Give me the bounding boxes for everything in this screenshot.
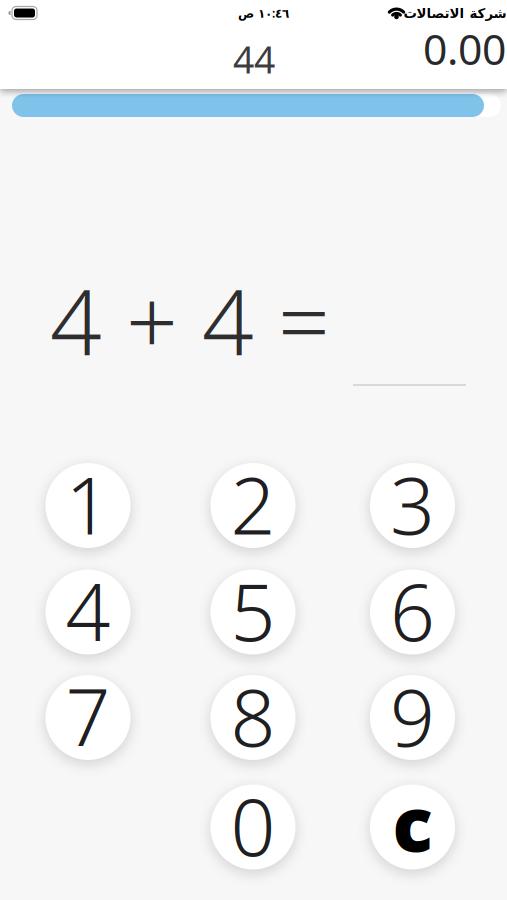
staticText: 9 <box>390 664 435 768</box>
staticText: 0.00 <box>423 20 506 77</box>
staticText: 8 <box>230 664 275 768</box>
button[interactable]: 8 <box>210 675 295 760</box>
button[interactable]: 7 <box>45 675 130 760</box>
button[interactable]: 4 <box>45 569 130 654</box>
staticText: شركة الاتصالات <box>403 6 506 21</box>
button[interactable]: 2 <box>210 463 295 548</box>
staticText: 6 <box>390 558 435 663</box>
staticText: ١٠:٤٦ ص <box>237 5 288 21</box>
staticText: 4 + 4 = <box>50 260 330 380</box>
button[interactable]: 3 <box>370 463 455 548</box>
staticText: 5 <box>230 558 275 663</box>
button[interactable]: 5 <box>210 569 295 654</box>
staticText: 1 <box>65 452 110 556</box>
staticText: 44 <box>233 34 275 84</box>
button[interactable]: 1 <box>45 463 130 548</box>
staticText: 0 <box>230 773 275 878</box>
button[interactable]: Clear <box>370 784 455 869</box>
staticText: 3 <box>390 452 435 556</box>
staticText: c <box>392 773 432 872</box>
staticText: 2 <box>230 452 275 556</box>
staticText: 7 <box>65 664 110 768</box>
staticText: 4 <box>65 558 110 663</box>
button[interactable]: 0 <box>210 784 295 869</box>
button[interactable]: 6 <box>370 569 455 654</box>
button[interactable]: 9 <box>370 675 455 760</box>
